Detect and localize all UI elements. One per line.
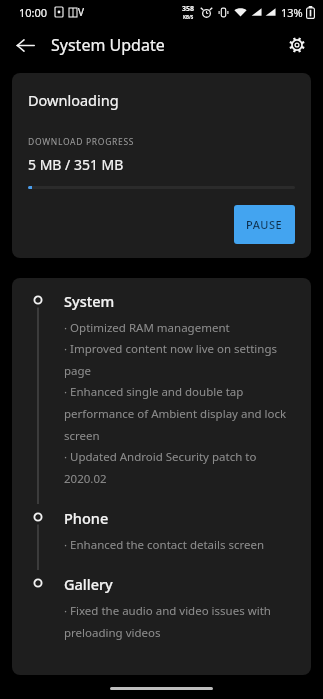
staticText: 10:00 xyxy=(19,5,48,20)
staticText: · Enhanced the contact details screen xyxy=(64,537,265,553)
staticText: · Improved content now live on settings … xyxy=(64,341,297,379)
staticText: KB/S xyxy=(183,14,194,20)
staticText: System Update xyxy=(51,34,165,56)
button[interactable]: PAUSE xyxy=(234,205,295,244)
staticText: 358 xyxy=(182,4,195,14)
staticText: Phone xyxy=(64,508,109,528)
staticText: · Optimized RAM management xyxy=(64,320,230,336)
staticText: Downloading xyxy=(28,90,119,110)
button[interactable]: Settings xyxy=(279,27,315,63)
staticText: · Enhanced single and double tap perform… xyxy=(64,384,297,444)
staticText: · Updated Android Security patch to 2020… xyxy=(64,449,297,487)
staticText: · Fixed the audio and video issues with … xyxy=(64,603,297,641)
staticText: 5 MB / 351 MB xyxy=(28,155,124,174)
staticText: Gallery xyxy=(64,574,113,594)
staticText: System xyxy=(64,291,115,311)
staticText: V xyxy=(78,5,84,19)
staticText: PAUSE xyxy=(246,217,283,232)
button[interactable]: Back xyxy=(7,27,43,63)
staticText: DOWNLOAD PROGRESS xyxy=(28,136,135,148)
staticText: 13% xyxy=(281,5,303,20)
